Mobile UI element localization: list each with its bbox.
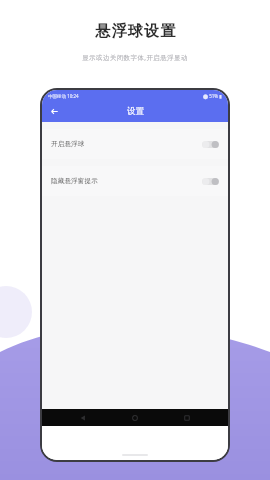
staticText: 隐藏悬浮窗提示	[51, 177, 98, 185]
button[interactable]: Recents	[180, 411, 194, 425]
staticText: 设置	[127, 106, 144, 117]
button[interactable]: Back	[76, 411, 90, 425]
staticText: ⬤ 51% ▮	[203, 93, 222, 99]
staticText: 显示或边关闭数字体,开启悬浮显动	[82, 53, 188, 62]
button[interactable]: 隐藏悬浮窗提示	[42, 166, 228, 196]
button[interactable]: Back	[46, 103, 63, 120]
staticText: 中国移动 10:24	[48, 93, 79, 99]
button[interactable]: Toggle	[202, 177, 219, 186]
staticText: 开启悬浮球	[51, 140, 85, 148]
button[interactable]: 开启悬浮球	[42, 129, 228, 159]
button[interactable]: Home	[128, 411, 142, 425]
staticText: 悬浮球设置	[95, 22, 176, 41]
button[interactable]: Toggle	[202, 140, 219, 149]
